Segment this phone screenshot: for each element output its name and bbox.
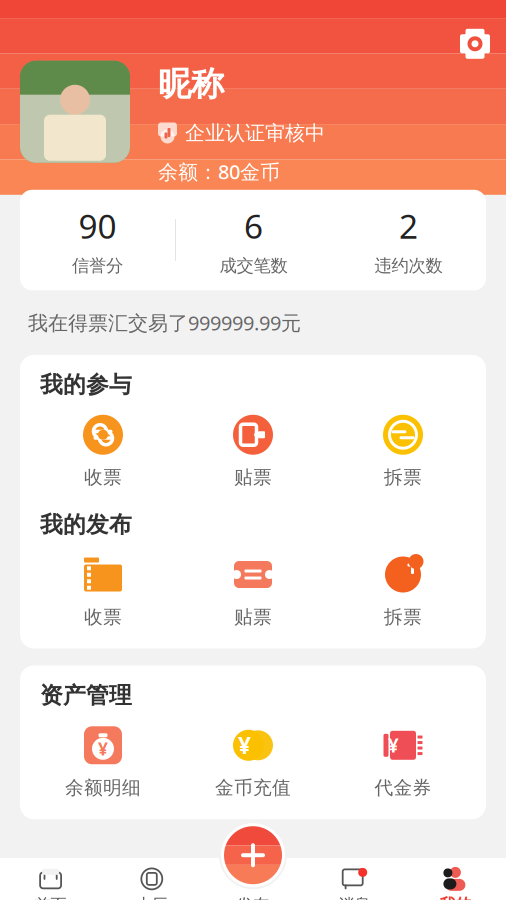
button[interactable]: 6 (176, 204, 331, 276)
staticText: 贴票 (234, 466, 272, 489)
staticText: 资产管理 (40, 681, 132, 709)
staticText: 收票 (84, 466, 122, 489)
staticText: 违约次数 (374, 255, 442, 276)
button[interactable]: 收票 (28, 548, 178, 632)
staticText: ¥ (388, 733, 399, 758)
staticText: 成交笔数 (219, 255, 287, 276)
staticText: 余额：80金币 (158, 158, 280, 185)
staticText: 90 (78, 204, 116, 248)
button[interactable]: 贴票 (178, 409, 328, 493)
button[interactable]: ¥ (328, 719, 478, 803)
staticText: ¥ (238, 730, 251, 760)
button[interactable]: 大厅 (101, 858, 202, 900)
button[interactable]: 首页 (0, 858, 101, 900)
staticText: 6 (244, 204, 263, 248)
button[interactable]: 发布 (202, 858, 304, 900)
staticText: 余额明细 (65, 776, 141, 799)
staticText: 收票 (84, 605, 122, 628)
button[interactable]: 拆票 (328, 548, 478, 632)
staticText: 消息 (338, 895, 370, 900)
staticText: 2 (399, 204, 418, 248)
button[interactable]: ¥ (178, 719, 328, 803)
staticText: 我的发布 (40, 511, 132, 538)
button[interactable]: 90 (20, 204, 175, 276)
button[interactable]: 收票 (28, 409, 178, 493)
staticText: 我的参与 (40, 371, 132, 399)
button[interactable]: 消息 (304, 858, 405, 900)
button[interactable]: 拆票 (328, 409, 478, 493)
staticText: 代金券 (374, 776, 431, 799)
staticText: 首页 (35, 895, 67, 900)
staticText: ¥ (98, 737, 108, 760)
button[interactable]: 我的 (405, 858, 506, 900)
staticText: 拆票 (384, 605, 422, 628)
button[interactable]: ¥ (28, 719, 178, 803)
staticText: 大厅 (136, 895, 168, 900)
staticText: 我在得票汇交易了999999.99元 (28, 309, 301, 336)
staticText: 企业认证审核中 (185, 121, 325, 145)
button[interactable]: 设置 (452, 21, 498, 67)
staticText: 我的 (439, 895, 471, 900)
staticText: 昵称 (158, 64, 224, 105)
staticText: 信誉分 (72, 255, 123, 276)
staticText: 贴票 (234, 605, 272, 628)
button[interactable]: 贴票 (178, 548, 328, 632)
staticText: 金币充值 (215, 776, 291, 799)
staticText: 发布 (237, 895, 269, 900)
staticText: 拆票 (384, 466, 422, 489)
button[interactable]: 2 (331, 204, 486, 276)
